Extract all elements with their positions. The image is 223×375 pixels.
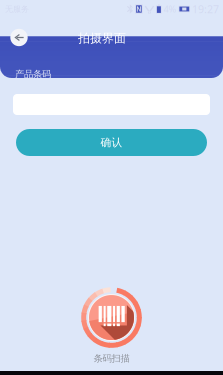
staticText: 确认 [100,136,122,149]
staticText: 条码扫描 [93,352,129,364]
staticText: 无服务 [5,4,29,14]
staticText: 4% [164,3,177,15]
staticText: 19:27 [192,2,219,16]
button[interactable]: 条码扫描 [80,286,142,364]
staticText: 产品条码 [15,68,51,80]
button[interactable]: 确认 [16,129,207,156]
staticText: 拍摄界面 [78,31,126,46]
button[interactable]: Back [6,24,32,50]
